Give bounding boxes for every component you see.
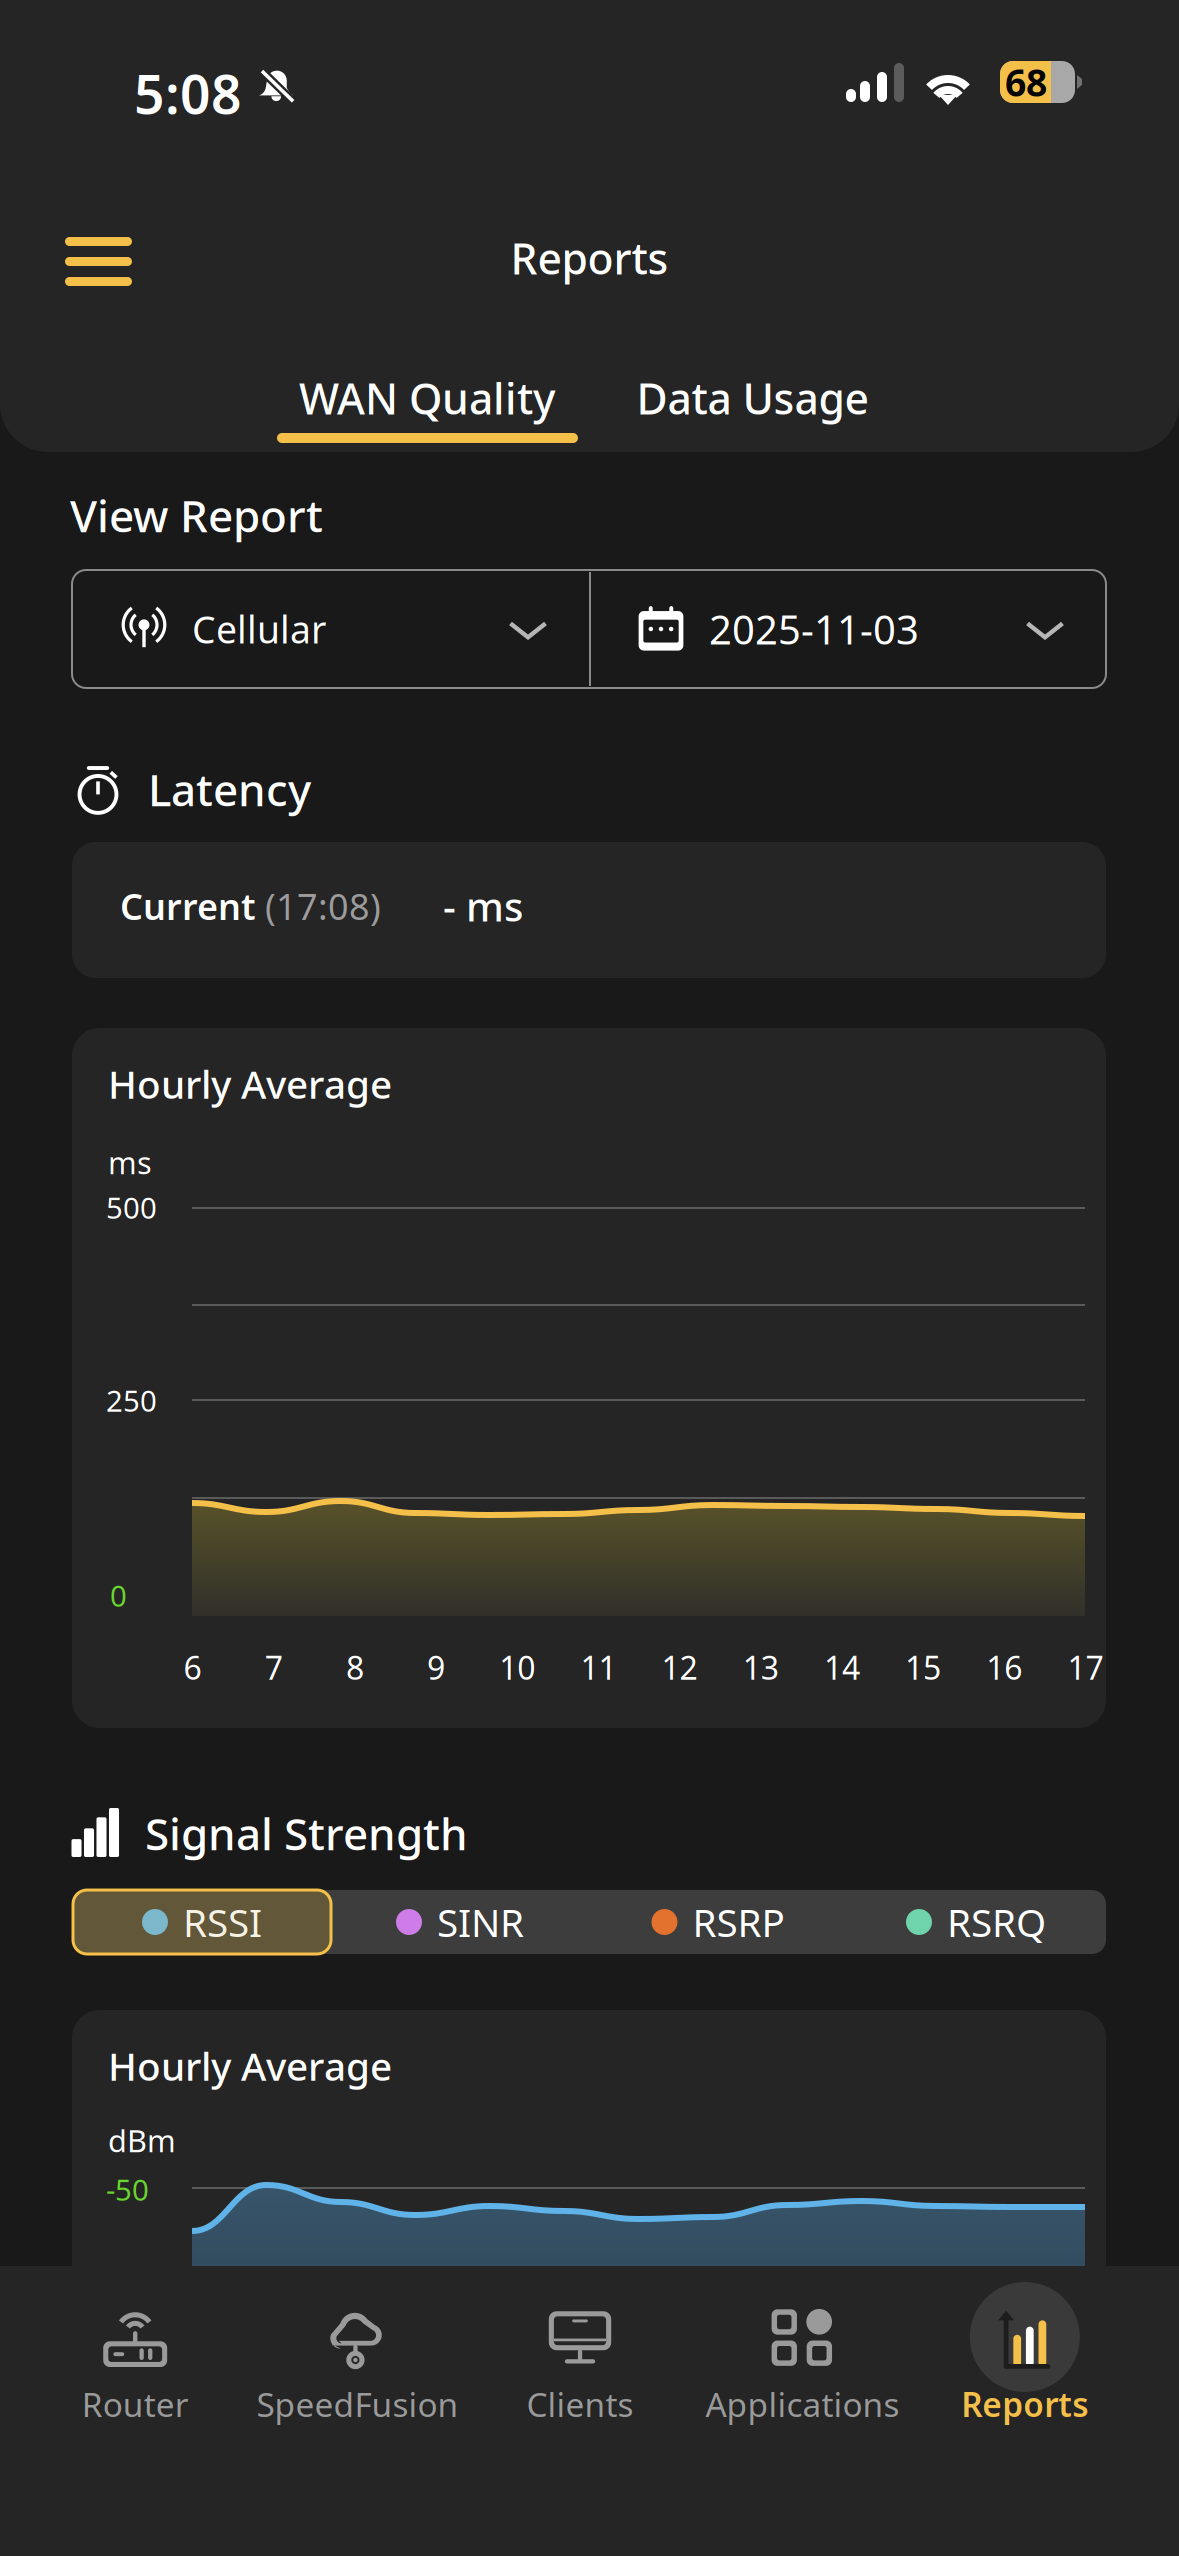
staticText: 17: [1067, 1646, 1103, 1688]
staticText: Latency: [148, 760, 311, 818]
staticText: 13: [743, 1646, 779, 1688]
staticText: 10: [499, 1646, 535, 1688]
button[interactable]: Reports: [914, 2282, 1136, 2462]
staticText: 6: [184, 1646, 202, 1688]
staticText: 12: [662, 1646, 698, 1688]
staticText: RSRP: [692, 1896, 784, 1948]
staticText: 7: [265, 1646, 283, 1688]
staticText: ms: [108, 1142, 152, 1183]
staticText: Hourly Average: [108, 1058, 392, 1109]
staticText: 9: [427, 1646, 445, 1688]
button[interactable]: Data Usage: [602, 358, 903, 448]
staticText: 5:08: [134, 58, 242, 129]
staticText: Cellular: [192, 604, 326, 654]
staticText: 14: [824, 1646, 860, 1688]
button[interactable]: SINR: [331, 1890, 589, 1954]
staticText: Reports: [510, 230, 668, 286]
staticText: Data Usage: [636, 370, 868, 426]
staticText: Reports: [961, 2382, 1088, 2426]
staticText: Applications: [705, 2382, 899, 2426]
staticText: (17:08): [256, 882, 381, 930]
staticText: RSRQ: [947, 1896, 1046, 1948]
staticText: 0: [110, 1576, 127, 1615]
staticText: - ms: [443, 879, 523, 932]
button[interactable]: Menu: [65, 238, 132, 285]
staticText: Router: [82, 2382, 189, 2426]
staticText: 250: [106, 1381, 157, 1420]
button[interactable]: RSRP: [589, 1890, 847, 1954]
staticText: 15: [905, 1646, 941, 1688]
staticText: dBm: [108, 2120, 176, 2161]
button[interactable]: RSRQ: [847, 1890, 1105, 1954]
staticText: View Report: [70, 486, 323, 544]
staticText: 2025-11-03: [709, 602, 919, 655]
staticText: RSSI: [183, 1896, 262, 1948]
button[interactable]: 2025-11-03: [589, 570, 1106, 688]
button[interactable]: RSSI: [73, 1890, 331, 1954]
button[interactable]: Cellular: [72, 570, 589, 688]
staticText: SINR: [437, 1896, 524, 1948]
staticText: WAN Quality: [299, 370, 556, 426]
button[interactable]: SpeedFusion: [246, 2282, 469, 2462]
staticText: Current: [120, 882, 256, 930]
staticText: 500: [106, 1188, 157, 1227]
staticText: Clients: [526, 2382, 633, 2426]
staticText: 11: [580, 1646, 616, 1688]
button[interactable]: Clients: [469, 2282, 691, 2462]
button[interactable]: Applications: [691, 2282, 914, 2462]
staticText: Signal Strength: [145, 1804, 468, 1862]
staticText: 16: [986, 1646, 1022, 1688]
staticText: SpeedFusion: [257, 2382, 459, 2426]
staticText: 68: [1005, 57, 1047, 107]
staticText: -50: [106, 2170, 149, 2209]
button[interactable]: WAN Quality: [277, 358, 578, 448]
staticText: 8: [346, 1646, 364, 1688]
staticText: Hourly Average: [108, 2040, 392, 2091]
button[interactable]: Router: [24, 2282, 246, 2462]
